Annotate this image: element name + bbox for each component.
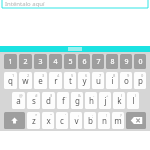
staticText: ) — [135, 93, 137, 98]
staticText: " — [50, 113, 52, 118]
staticText: b — [88, 115, 93, 126]
staticText: e — [38, 75, 43, 86]
staticText: ; — [92, 113, 94, 118]
staticText: l — [132, 95, 135, 106]
staticText: @ — [19, 93, 23, 98]
staticText: n — [102, 115, 107, 126]
staticText: r — [54, 75, 58, 86]
staticText: 2 — [23, 57, 28, 67]
staticText: : — [78, 113, 80, 118]
staticText: h — [89, 95, 94, 106]
button[interactable]: @ — [12, 92, 25, 109]
button[interactable]: * — [27, 112, 40, 129]
button[interactable]: Backspace — [126, 112, 146, 129]
staticText: w — [22, 75, 29, 86]
button[interactable]: 4 — [49, 72, 62, 89]
button[interactable]: 4 — [49, 54, 62, 69]
staticText: i — [111, 75, 114, 86]
button[interactable]: Inténtalo aquí — [2, 0, 148, 8]
button[interactable]: 8 — [106, 54, 118, 69]
button[interactable]: 0 — [134, 72, 146, 89]
staticText: x — [46, 115, 51, 126]
staticText: 5 — [71, 73, 74, 78]
button[interactable]: 9 — [120, 72, 132, 89]
staticText: m — [114, 115, 122, 126]
staticText: p — [138, 75, 143, 86]
staticText: u — [96, 75, 101, 86]
staticText: ' — [65, 113, 66, 118]
button[interactable]: ! — [98, 112, 110, 129]
staticText: f — [62, 95, 65, 106]
staticText: 3 — [42, 73, 45, 78]
staticText: c — [60, 115, 64, 126]
staticText: # — [35, 93, 38, 98]
staticText: * — [35, 113, 38, 118]
button[interactable]: # — [27, 92, 40, 109]
staticText: 4 — [57, 73, 60, 78]
staticText: 0 — [138, 57, 143, 67]
staticText: 0 — [141, 73, 144, 78]
button[interactable]: 6 — [78, 54, 90, 69]
staticText: o — [124, 75, 129, 86]
button[interactable]: 3 — [34, 54, 47, 69]
staticText: _ — [65, 93, 67, 98]
button[interactable]: Shift — [4, 112, 25, 129]
staticText: 7 — [96, 57, 101, 67]
staticText: g — [75, 95, 80, 106]
button[interactable]: 5 — [64, 72, 76, 89]
button[interactable]: : — [70, 112, 82, 129]
staticText: z — [32, 115, 36, 126]
staticText: $ — [50, 93, 53, 98]
button[interactable]: 7 — [92, 72, 104, 89]
button[interactable]: $ — [42, 92, 55, 109]
staticText: 1 — [12, 73, 15, 78]
staticText: 6 — [82, 57, 87, 67]
staticText: 8 — [113, 73, 116, 78]
button[interactable]: & — [71, 92, 83, 109]
button[interactable]: 3 — [34, 72, 47, 89]
staticText: 7 — [99, 73, 102, 78]
staticText: j — [104, 95, 107, 106]
staticText: 9 — [124, 57, 129, 67]
staticText: + — [106, 93, 109, 98]
button[interactable]: + — [99, 92, 111, 109]
staticText: 4 — [53, 57, 58, 67]
button[interactable]: 2 — [19, 72, 32, 89]
staticText: a — [16, 95, 21, 106]
button[interactable]: ; — [84, 112, 96, 129]
button[interactable]: 9 — [120, 54, 132, 69]
button[interactable]: 5 — [64, 54, 76, 69]
staticText: 5 — [68, 57, 73, 67]
button[interactable]: ( — [113, 92, 125, 109]
staticText: 3 — [38, 57, 43, 67]
staticText: s — [32, 95, 36, 106]
button[interactable]: ) — [127, 92, 139, 109]
button[interactable]: ? — [112, 112, 124, 129]
staticText: 8 — [110, 57, 115, 67]
staticText: d — [46, 95, 51, 106]
button[interactable]: 8 — [106, 72, 118, 89]
button[interactable]: 1 — [4, 54, 17, 69]
button[interactable]: 7 — [92, 54, 104, 69]
button[interactable]: 6 — [78, 72, 90, 89]
staticText: ( — [121, 93, 123, 98]
button[interactable]: 2 — [19, 54, 32, 69]
staticText: & — [78, 93, 81, 98]
button[interactable]: 0 — [134, 54, 146, 69]
button[interactable]: 1 — [4, 72, 17, 89]
staticText: q — [8, 75, 13, 86]
button[interactable]: ' — [56, 112, 68, 129]
staticText: 1 — [8, 57, 13, 67]
staticText: k — [117, 95, 122, 106]
staticText: t — [69, 75, 72, 86]
button[interactable]: _ — [57, 92, 69, 109]
staticText: v — [74, 115, 79, 126]
staticText: 6 — [85, 73, 88, 78]
button[interactable]: - — [85, 92, 97, 109]
staticText: 2 — [27, 73, 30, 78]
staticText: y — [82, 75, 87, 86]
staticText: ? — [120, 113, 122, 118]
staticText: 9 — [127, 73, 130, 78]
staticText: ! — [106, 113, 108, 118]
button[interactable]: " — [42, 112, 54, 129]
